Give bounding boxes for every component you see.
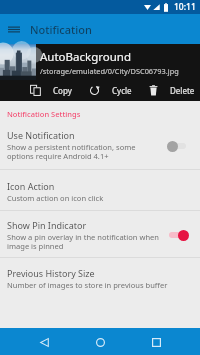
- button[interactable]: Home: [88, 330, 112, 354]
- staticText: Icon Action: [7, 180, 55, 192]
- staticText: Show a persistent notification, some opt…: [7, 142, 136, 161]
- staticText: Show a pin overlay in the notification w…: [7, 232, 160, 251]
- staticText: AutoBackground: [40, 49, 131, 65]
- button[interactable]: Show Pin Indicator: [0, 211, 200, 257]
- staticText: Custom action on icon click: [7, 193, 104, 203]
- staticText: Show Pin Indicator: [7, 219, 87, 231]
- staticText: Notification: [30, 22, 92, 37]
- button[interactable]: Copy: [30, 80, 72, 101]
- button[interactable]: Open navigation drawer: [0, 14, 28, 44]
- staticText: Notification Settings: [7, 109, 81, 119]
- button[interactable]: Use Notification: [0, 126, 200, 169]
- staticText: Copy: [53, 85, 72, 96]
- staticText: Delete: [170, 85, 195, 96]
- button[interactable]: Toggle off: [167, 140, 188, 152]
- button[interactable]: Icon Action: [0, 170, 200, 210]
- button[interactable]: Delete: [149, 80, 195, 101]
- button[interactable]: Back: [32, 330, 56, 354]
- staticText: Use Notification: [7, 129, 75, 141]
- button[interactable]: Previous History Size: [0, 258, 200, 298]
- button[interactable]: Cycle: [89, 80, 132, 101]
- button[interactable]: Toggle on: [167, 229, 188, 241]
- staticText: /storage/emulated/0/City/DSC06793.jpg: [40, 66, 179, 76]
- staticText: Number of images to store in previous bu…: [7, 280, 168, 290]
- button[interactable]: Recents: [144, 330, 168, 354]
- staticText: Previous History Size: [7, 267, 95, 279]
- staticText: Cycle: [112, 85, 132, 96]
- staticText: 10:11: [174, 1, 196, 13]
